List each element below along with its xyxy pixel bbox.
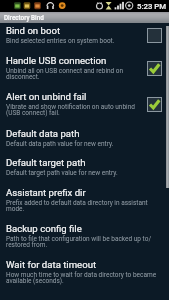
button[interactable]: Wait for data timeout [0, 257, 169, 293]
button[interactable]: Default target path [0, 155, 169, 185]
button[interactable]: Bind on boot [0, 23, 169, 53]
staticText: How much time to wait for data directory… [6, 271, 161, 285]
staticText: Path to file that configuration will be … [6, 235, 161, 249]
staticText: Vibrate and show notification on auto un… [6, 103, 144, 117]
staticText: Default data path value for new entry. [6, 140, 114, 148]
button[interactable]: Alert on unbind fail [147, 97, 162, 112]
staticText: Unbind all on USB connect and rebind on … [6, 67, 144, 81]
staticText: Prefix added to default data directory i… [6, 199, 161, 213]
staticText: Directory Bind [4, 14, 44, 21]
staticText: Wait for data timeout [6, 258, 97, 271]
button[interactable]: Handle USB connection [0, 53, 169, 89]
button[interactable]: Handle USB connection [147, 61, 162, 76]
button[interactable]: Assistant prefix dir [0, 185, 169, 221]
staticText: Handle USB connection [6, 54, 107, 67]
staticText: Bind on boot [6, 24, 61, 37]
staticText: Bind selected entries on system boot. [6, 37, 115, 45]
staticText: Default target path value for new entry. [6, 169, 118, 177]
staticText: Default target path [6, 156, 86, 169]
button[interactable]: Backup config file [0, 221, 169, 257]
staticText: Alert on unbind fail [6, 90, 87, 103]
staticText: Assistant prefix dir [6, 186, 86, 199]
button[interactable]: Alert on unbind fail [0, 89, 169, 126]
staticText: Backup config file [6, 222, 82, 235]
button[interactable]: Directory Bind [0, 12, 169, 23]
staticText: 5:23 PM [137, 2, 167, 11]
staticText: Default data path [6, 127, 80, 140]
button[interactable]: Default data path [0, 126, 169, 155]
button[interactable]: Bind on boot [147, 28, 162, 43]
